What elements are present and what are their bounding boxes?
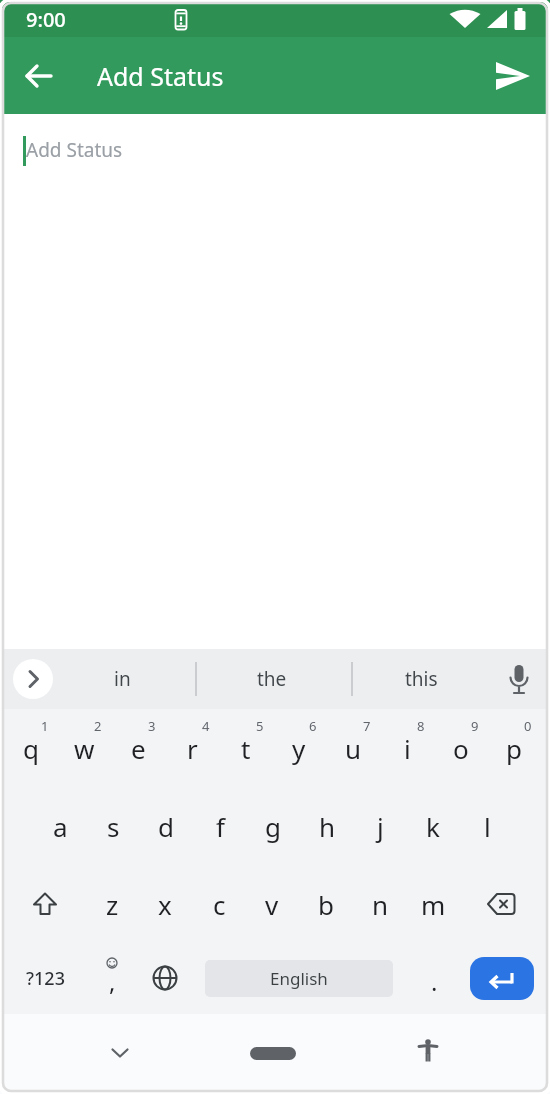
- button[interactable]: [408, 1031, 448, 1071]
- staticText: n: [372, 887, 389, 922]
- button[interactable]: x: [138, 865, 192, 943]
- staticText: g: [265, 809, 281, 844]
- button[interactable]: i: [380, 709, 434, 787]
- staticText: English: [270, 967, 328, 990]
- button[interactable]: [143, 956, 187, 1000]
- staticText: 5: [256, 717, 264, 735]
- staticText: v: [265, 887, 279, 922]
- staticText: ,: [109, 965, 116, 998]
- button[interactable]: m: [406, 865, 460, 943]
- button[interactable]: [250, 1047, 296, 1060]
- button[interactable]: l: [460, 787, 514, 865]
- staticText: o: [453, 731, 469, 766]
- staticText: r: [187, 731, 198, 766]
- staticText: ?123: [26, 966, 65, 991]
- button[interactable]: v: [245, 865, 299, 943]
- staticText: d: [158, 809, 174, 844]
- staticText: this: [405, 666, 438, 692]
- button[interactable]: [489, 52, 537, 100]
- button[interactable]: y: [272, 709, 326, 787]
- button[interactable]: a: [33, 787, 87, 865]
- staticText: h: [319, 809, 336, 844]
- button[interactable]: [17, 875, 73, 933]
- button[interactable]: g: [246, 787, 300, 865]
- button[interactable]: [470, 957, 534, 1000]
- staticText: Add Status: [97, 59, 224, 93]
- staticText: f: [216, 809, 225, 844]
- button[interactable]: h: [300, 787, 354, 865]
- staticText: the: [257, 666, 287, 692]
- staticText: 8: [417, 717, 425, 735]
- button[interactable]: ?123: [17, 955, 73, 1001]
- staticText: 1: [41, 717, 49, 735]
- staticText: t: [241, 731, 251, 766]
- button[interactable]: ,: [97, 963, 127, 999]
- staticText: j: [377, 809, 384, 844]
- button[interactable]: t: [219, 709, 273, 787]
- staticText: u: [345, 731, 362, 766]
- button[interactable]: this: [376, 659, 466, 699]
- button[interactable]: j: [353, 787, 407, 865]
- button[interactable]: r: [165, 709, 219, 787]
- button[interactable]: z: [85, 865, 139, 943]
- button[interactable]: [499, 660, 539, 700]
- staticText: i: [404, 731, 411, 766]
- button[interactable]: f: [193, 787, 247, 865]
- staticText: k: [426, 809, 440, 844]
- staticText: 3: [148, 717, 156, 735]
- staticText: 6: [309, 717, 317, 735]
- staticText: b: [318, 887, 334, 922]
- button[interactable]: c: [192, 865, 246, 943]
- button[interactable]: q: [4, 709, 58, 787]
- staticText: in: [114, 666, 131, 692]
- button[interactable]: s: [86, 787, 140, 865]
- staticText: y: [292, 731, 306, 766]
- button[interactable]: k: [406, 787, 460, 865]
- button[interactable]: w: [57, 709, 111, 787]
- staticText: s: [107, 809, 120, 844]
- button[interactable]: .: [420, 963, 448, 999]
- button[interactable]: [100, 1033, 140, 1073]
- staticText: 9:00: [26, 6, 66, 33]
- staticText: w: [74, 731, 95, 766]
- button[interactable]: b: [299, 865, 353, 943]
- button[interactable]: u: [326, 709, 380, 787]
- staticText: x: [158, 887, 172, 922]
- button[interactable]: [13, 659, 53, 699]
- staticText: 4: [202, 717, 210, 735]
- staticText: .: [431, 965, 438, 998]
- staticText: a: [53, 809, 68, 844]
- button[interactable]: o: [434, 709, 488, 787]
- staticText: l: [484, 809, 491, 844]
- button[interactable]: in: [77, 659, 167, 699]
- staticText: 2: [94, 717, 102, 735]
- button[interactable]: d: [139, 787, 193, 865]
- staticText: 0: [524, 717, 532, 735]
- button[interactable]: n: [353, 865, 407, 943]
- button[interactable]: p: [487, 709, 541, 787]
- staticText: Add Status: [26, 137, 123, 163]
- button[interactable]: e: [111, 709, 165, 787]
- staticText: p: [506, 731, 522, 766]
- staticText: e: [131, 731, 146, 766]
- staticText: c: [213, 887, 226, 922]
- button[interactable]: [473, 875, 529, 933]
- button[interactable]: English: [205, 960, 393, 997]
- staticText: m: [421, 887, 446, 922]
- staticText: 9: [471, 717, 479, 735]
- staticText: 7: [363, 717, 371, 735]
- staticText: z: [106, 887, 119, 922]
- button[interactable]: the: [227, 659, 317, 699]
- staticText: q: [23, 731, 39, 766]
- button[interactable]: [15, 52, 63, 100]
